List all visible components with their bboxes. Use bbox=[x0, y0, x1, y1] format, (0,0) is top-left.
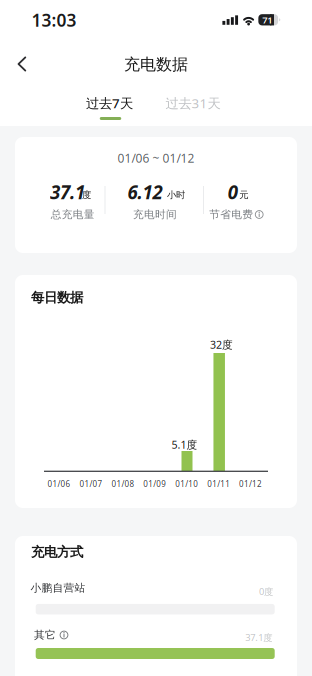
button[interactable]: 过去7天 bbox=[73, 88, 145, 118]
staticText: 5.1度 bbox=[171, 437, 197, 452]
button[interactable]: Back bbox=[0, 42, 44, 86]
button[interactable]: 说明 bbox=[59, 630, 69, 640]
staticText: 小时 bbox=[167, 189, 185, 201]
staticText: 01/11 bbox=[207, 479, 230, 489]
staticText: 充电时间 bbox=[133, 208, 177, 221]
staticText: 节省电费 bbox=[209, 208, 253, 221]
staticText: 01/12 bbox=[239, 479, 262, 489]
staticText: 01/06 ~ 01/12 bbox=[117, 150, 194, 166]
staticText: 0度 bbox=[259, 585, 273, 598]
staticText: 过去31天 bbox=[165, 94, 220, 112]
staticText: 01/06 bbox=[47, 479, 70, 489]
staticText: 13:03 bbox=[31, 8, 76, 31]
staticText: 小鹏自营站 bbox=[30, 581, 85, 594]
staticText: 元 bbox=[239, 189, 248, 201]
staticText: 过去7天 bbox=[86, 94, 133, 112]
staticText: 71 bbox=[262, 14, 272, 26]
staticText: 其它 bbox=[34, 628, 56, 641]
staticText: 每日数据 bbox=[31, 289, 83, 306]
staticText: 37.1 bbox=[50, 180, 85, 204]
button[interactable]: 说明 bbox=[254, 209, 264, 219]
staticText: 32度 bbox=[210, 337, 233, 352]
staticText: 度 bbox=[82, 189, 91, 201]
staticText: 充电数据 bbox=[124, 55, 188, 74]
button[interactable]: 过去31天 bbox=[155, 88, 231, 118]
staticText: 37.1度 bbox=[245, 631, 272, 644]
staticText: 总充电量 bbox=[51, 208, 95, 221]
staticText: 01/08 bbox=[111, 479, 134, 489]
staticText: 01/09 bbox=[143, 479, 166, 489]
staticText: 0 bbox=[228, 180, 238, 204]
staticText: 01/07 bbox=[79, 479, 102, 489]
staticText: 6.12 bbox=[127, 180, 162, 204]
staticText: 充电方式 bbox=[31, 544, 83, 560]
staticText: 01/10 bbox=[175, 479, 198, 489]
